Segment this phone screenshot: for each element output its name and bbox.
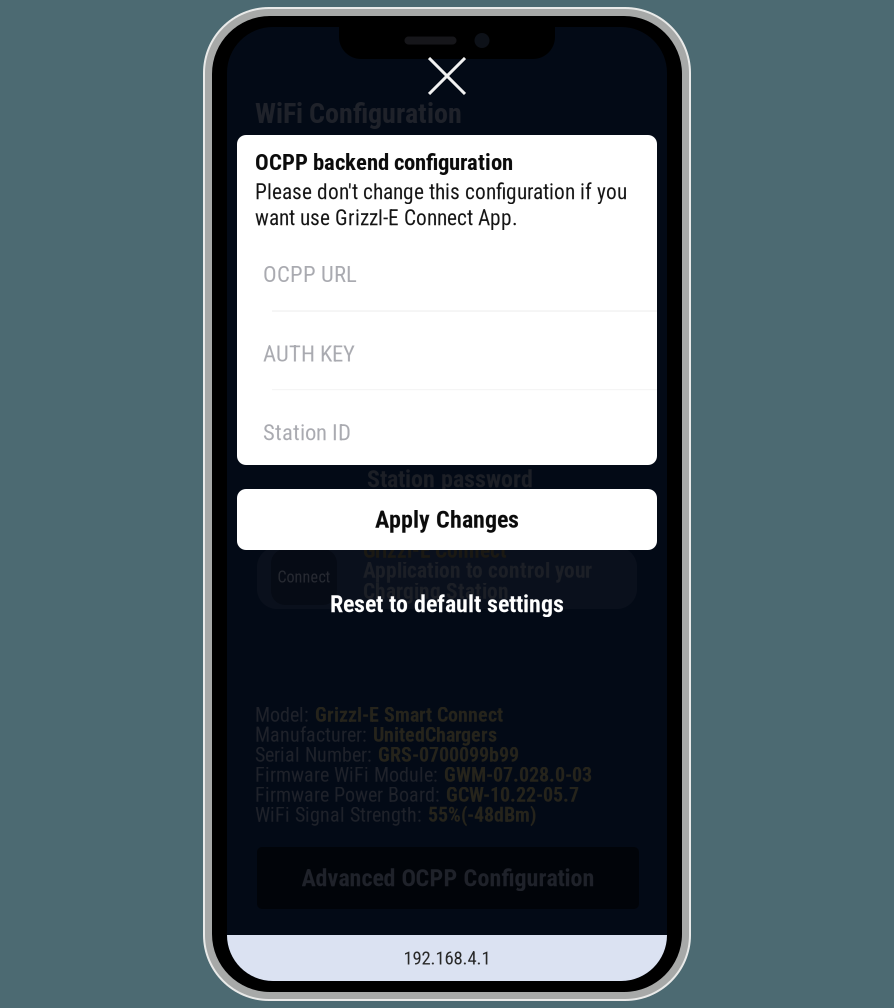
staticText: AUTH KEY	[263, 341, 355, 367]
staticText: Firmware Power Board:	[255, 783, 440, 807]
staticText: Connect	[277, 568, 330, 586]
staticText: UnitedChargers	[373, 723, 497, 747]
staticText: Advanced OCPP Configuration	[301, 864, 594, 892]
staticText: GWM-07.028.0-03	[444, 763, 592, 787]
staticText: GRS-0700099b99	[378, 743, 519, 767]
button[interactable]: Reset to default settings	[237, 589, 657, 619]
staticText: Station ID	[263, 419, 351, 446]
staticText: Please don't change this configuration i…	[255, 180, 627, 205]
button[interactable]: Apply Changes	[237, 489, 657, 550]
staticText: Firmware WiFi Module:	[255, 763, 438, 787]
staticText: Model:	[255, 703, 309, 727]
staticText: Grizzl-E Smart Connect	[315, 703, 503, 727]
staticText: Charging Station	[363, 579, 509, 604]
staticText: Station password	[367, 465, 533, 493]
staticText: Grizzl-E Connect	[363, 538, 507, 563]
staticText: 192.168.4.1	[403, 947, 490, 969]
staticText: OCPP backend configuration	[255, 149, 513, 176]
staticText: WiFi Configuration	[255, 97, 462, 130]
button[interactable]: Close	[417, 50, 477, 102]
staticText: Application to control your	[363, 558, 592, 583]
staticText: OCPP URL	[263, 261, 357, 288]
staticText: Manufacturer:	[255, 723, 367, 747]
button[interactable]: Advanced OCPP Configuration	[257, 847, 639, 909]
staticText: want use Grizzl-E Connect App.	[255, 206, 518, 231]
staticText: Serial Number:	[255, 743, 372, 767]
staticText: 55%(-48dBm)	[428, 803, 536, 827]
staticText: GCW-10.22-05.7	[446, 783, 579, 807]
staticText: WiFi Signal Strength:	[255, 803, 422, 827]
staticText: Apply Changes	[375, 505, 519, 533]
staticText: Reset to default settings	[330, 590, 564, 618]
